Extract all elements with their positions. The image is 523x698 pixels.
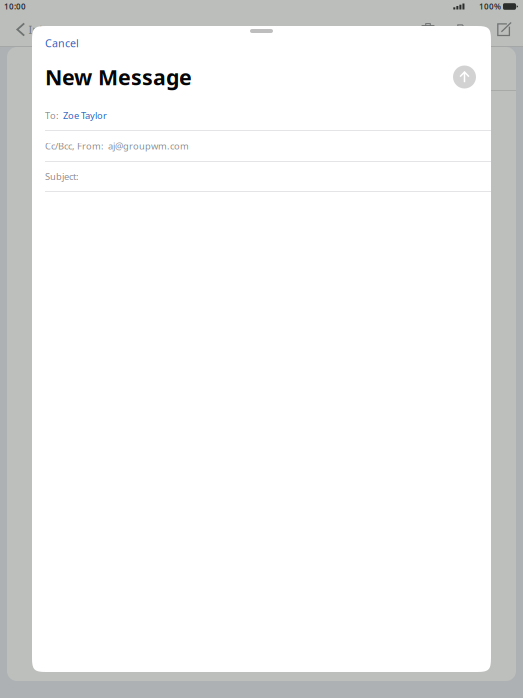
staticText: To: bbox=[45, 109, 59, 122]
staticText: New Message bbox=[45, 63, 192, 91]
button[interactable]: Compose bbox=[496, 22, 512, 37]
staticText: aj@groupwm.com bbox=[104, 140, 189, 152]
button[interactable]: Cancel bbox=[32, 33, 491, 53]
staticText: 100% bbox=[479, 1, 501, 12]
staticText: Zoe Taylor bbox=[59, 109, 107, 122]
button[interactable]: Delete bbox=[421, 22, 435, 37]
staticText: Subject: bbox=[45, 170, 79, 183]
button[interactable]: Inbox bbox=[16, 22, 58, 37]
button[interactable]: Send bbox=[451, 63, 478, 90]
staticText: 10:00 bbox=[4, 1, 26, 12]
button[interactable]: To: bbox=[45, 101, 491, 131]
staticText: Cancel bbox=[45, 36, 79, 50]
staticText: Inbox bbox=[28, 22, 58, 37]
button[interactable]: Cc/Bcc, From: bbox=[45, 131, 491, 162]
button[interactable]: Move to folder bbox=[457, 22, 472, 36]
button[interactable]: Subject: bbox=[45, 162, 491, 192]
staticText: Cc/Bcc, From: bbox=[45, 140, 104, 152]
